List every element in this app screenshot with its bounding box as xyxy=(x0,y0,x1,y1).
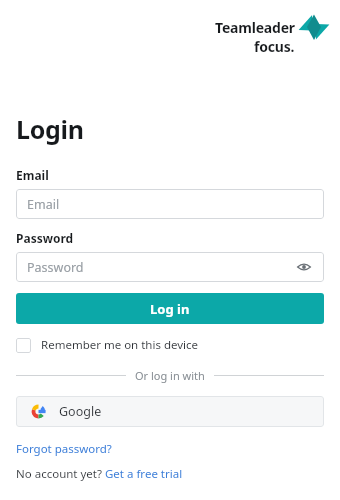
staticText: Teamleader xyxy=(215,18,295,37)
staticText: Password xyxy=(27,259,295,276)
staticText: Log in xyxy=(150,300,190,318)
button[interactable]: Email xyxy=(16,189,324,219)
button[interactable]: Log in xyxy=(16,293,324,324)
button[interactable]: Forgot password? xyxy=(16,441,112,457)
staticText: Password xyxy=(16,230,74,246)
staticText: Google xyxy=(59,403,102,420)
button[interactable]: Show password xyxy=(295,258,313,276)
staticText: focus. xyxy=(254,37,295,56)
staticText: Remember me on this device xyxy=(41,337,199,353)
button[interactable]: No account yet? Get a free trial xyxy=(16,466,183,482)
staticText: Or log in with xyxy=(135,368,205,383)
staticText: Login xyxy=(16,112,84,146)
button[interactable]: Remember me on this device xyxy=(16,334,199,356)
staticText: Email xyxy=(16,167,49,183)
staticText: Email xyxy=(27,196,313,213)
button[interactable]: Google xyxy=(16,396,324,427)
button[interactable]: Password xyxy=(16,252,324,282)
